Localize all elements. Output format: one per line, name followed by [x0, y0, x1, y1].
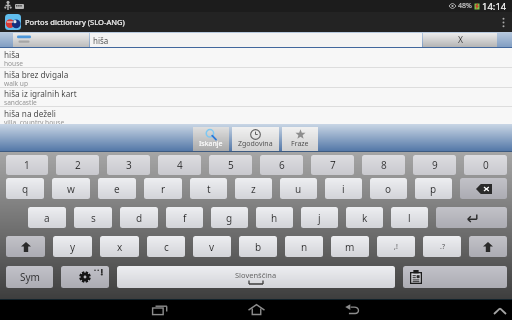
staticText: k: [362, 211, 368, 225]
button[interactable]: s: [74, 207, 112, 228]
button[interactable]: hiša iz igralnih kart: [0, 87, 512, 107]
button[interactable]: [436, 207, 507, 228]
button[interactable]: t: [190, 178, 227, 199]
button[interactable]: g: [211, 207, 248, 228]
staticText: 8: [381, 158, 387, 172]
button[interactable]: 1: [6, 155, 48, 175]
button[interactable]: u: [280, 178, 317, 199]
button[interactable]: y: [53, 236, 92, 257]
button[interactable]: k: [346, 207, 383, 228]
button[interactable]: j: [301, 207, 338, 228]
button[interactable]: d: [120, 207, 158, 228]
staticText: villa, country house: [4, 118, 65, 127]
button[interactable]: Home: [226, 299, 286, 320]
staticText: o: [385, 182, 392, 196]
staticText: b: [255, 240, 262, 254]
button[interactable]: f: [166, 207, 203, 228]
staticText: Slovenščina: [235, 270, 277, 280]
button[interactable]: r: [144, 178, 182, 199]
staticText: c: [164, 240, 169, 254]
button[interactable]: a: [28, 207, 66, 228]
staticText: 14:14: [482, 0, 507, 12]
button[interactable]: [469, 236, 507, 257]
staticText: l: [408, 211, 411, 225]
staticText: g: [226, 211, 233, 225]
staticText: v: [209, 240, 215, 254]
button[interactable]: p: [415, 178, 452, 199]
staticText: 2: [75, 158, 81, 172]
staticText: w: [67, 182, 75, 196]
button[interactable]: c: [147, 236, 185, 257]
button[interactable]: 0: [464, 155, 507, 175]
staticText: 4: [177, 158, 183, 172]
button[interactable]: 3: [107, 155, 150, 175]
button[interactable]: z: [235, 178, 272, 199]
button[interactable]: l: [391, 207, 428, 228]
button[interactable]: b: [239, 236, 277, 257]
button[interactable]: Slovenščina: [117, 266, 395, 288]
button[interactable]: x: [100, 236, 139, 257]
button[interactable]: Recent apps: [130, 299, 190, 320]
button[interactable]: Fraze: [282, 127, 318, 151]
button[interactable]: [403, 266, 507, 288]
button[interactable]: v: [193, 236, 231, 257]
staticText: u: [295, 182, 302, 196]
staticText: r: [161, 182, 166, 196]
button[interactable]: Iskanje: [193, 127, 229, 151]
staticText: hiša brez dvigala: [4, 69, 69, 80]
button[interactable]: q: [6, 178, 44, 199]
staticText: j: [318, 211, 321, 225]
staticText: walk up: [4, 79, 28, 88]
button[interactable]: [460, 178, 507, 199]
button[interactable]: hiša: [90, 33, 422, 47]
staticText: t: [207, 182, 211, 196]
staticText: x: [117, 240, 123, 254]
button[interactable]: m: [331, 236, 369, 257]
button[interactable]: 4: [158, 155, 201, 175]
staticText: 3: [126, 158, 132, 172]
staticText: y: [70, 240, 76, 254]
button[interactable]: 9: [413, 155, 456, 175]
button[interactable]: Zgodovina: [232, 127, 279, 151]
button[interactable]: hiša na deželi: [0, 107, 512, 127]
staticText: hiša iz igralnih kart: [4, 88, 77, 99]
button[interactable]: Language selector: [13, 33, 89, 47]
button[interactable]: 8: [362, 155, 405, 175]
button[interactable]: 7: [311, 155, 354, 175]
staticText: Zgodovina: [238, 139, 273, 149]
button[interactable]: i: [325, 178, 362, 199]
staticText: 0: [483, 158, 489, 172]
button[interactable]: 6: [260, 155, 303, 175]
staticText: 48%: [458, 1, 472, 11]
staticText: 7: [330, 158, 336, 172]
button[interactable]: 5: [209, 155, 252, 175]
staticText: Portos dictionary (SLO-ANG): [25, 17, 125, 27]
button[interactable]: .?: [423, 236, 461, 257]
button[interactable]: X: [423, 33, 497, 47]
staticText: ,!: [394, 242, 398, 252]
button[interactable]: Back: [322, 299, 382, 320]
button[interactable]: Sym: [6, 266, 53, 288]
staticText: hiša: [4, 49, 20, 60]
staticText: h: [271, 211, 278, 225]
staticText: X: [458, 34, 463, 46]
staticText: house: [4, 59, 24, 68]
staticText: hiša: [93, 35, 109, 46]
staticText: q: [22, 182, 29, 196]
button[interactable]: ,!: [377, 236, 415, 257]
button[interactable]: w: [52, 178, 90, 199]
button[interactable]: [61, 266, 109, 288]
button[interactable]: [6, 236, 45, 257]
button[interactable]: Hide keyboard: [486, 299, 512, 320]
button[interactable]: hiša: [0, 48, 512, 68]
staticText: Sym: [20, 270, 40, 284]
button[interactable]: hiša brez dvigala: [0, 68, 512, 88]
button[interactable]: e: [98, 178, 136, 199]
button[interactable]: o: [370, 178, 407, 199]
button[interactable]: h: [256, 207, 293, 228]
button[interactable]: 2: [56, 155, 99, 175]
button[interactable]: n: [285, 236, 323, 257]
staticText: Iskanje: [199, 139, 223, 149]
staticText: z: [251, 182, 256, 196]
staticText: sandcastle: [4, 98, 37, 107]
